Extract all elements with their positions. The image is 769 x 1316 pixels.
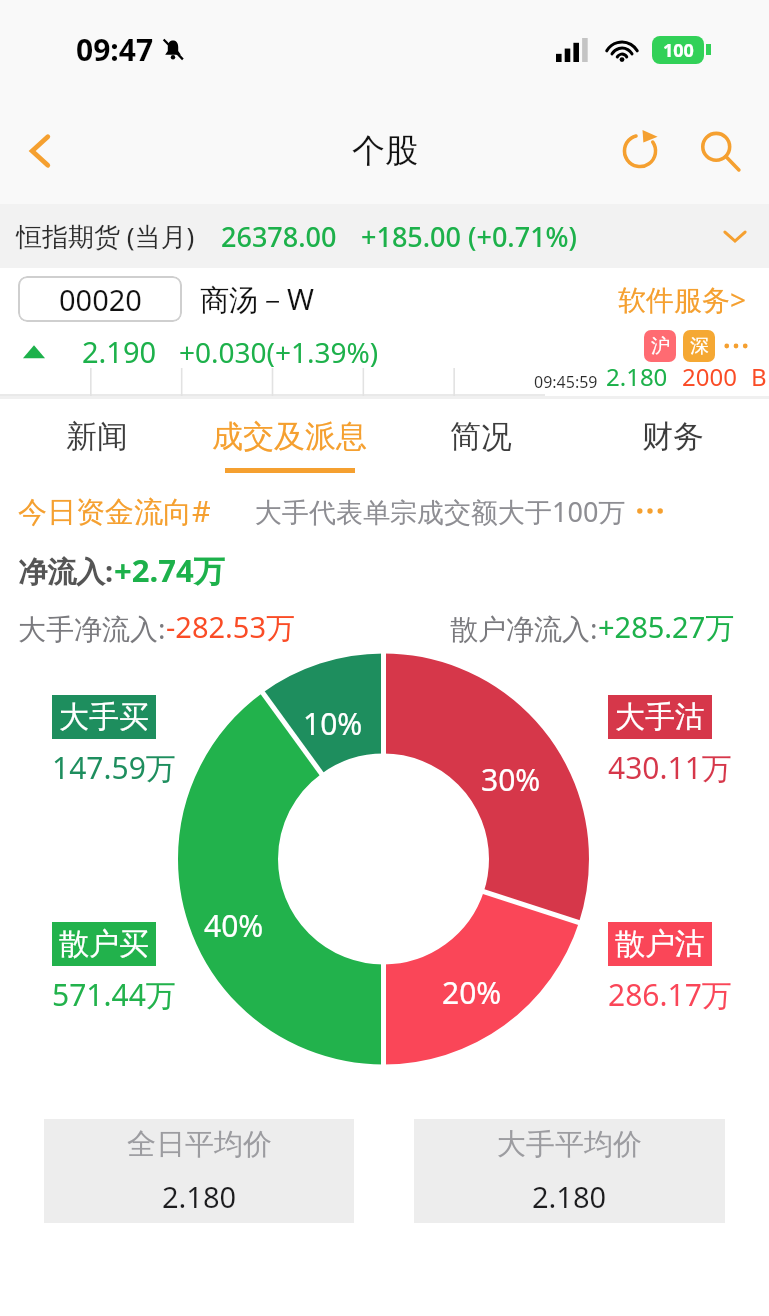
- staticText: 深: [690, 334, 709, 358]
- staticText: 2000: [682, 360, 737, 393]
- staticText: 2.190: [82, 332, 157, 371]
- staticText: 软件服务>: [618, 280, 747, 318]
- staticText: 新闻: [66, 417, 128, 456]
- staticText: 2.180: [606, 360, 668, 393]
- staticText: 大手沽: [615, 698, 705, 736]
- staticText: 大手平均价: [497, 1126, 642, 1163]
- staticText: 40%: [204, 905, 264, 946]
- staticText: +185.00 (+0.71%): [361, 218, 577, 255]
- staticText: 散户买: [59, 925, 149, 963]
- staticText: +285.27万: [598, 607, 735, 647]
- staticText: 个股: [352, 130, 418, 172]
- button[interactable]: 大手平均价: [414, 1119, 725, 1223]
- staticText: B: [751, 360, 767, 393]
- staticText: 净流入:: [18, 551, 114, 591]
- staticText: 09:47: [76, 29, 154, 70]
- staticText: +0.030(+1.39%): [179, 333, 379, 371]
- staticText: -282.53万: [166, 607, 296, 647]
- staticText: 散户净流入:: [450, 609, 598, 647]
- staticText: +2.74万: [114, 549, 225, 591]
- staticText: 00020: [59, 280, 142, 319]
- staticText: 大手代表单宗成交额大于100万: [255, 493, 626, 530]
- button[interactable]: 新闻: [0, 399, 193, 491]
- staticText: 286.17万: [608, 974, 732, 1015]
- button[interactable]: 00020: [18, 276, 182, 322]
- staticText: 恒指期货 (当月): [16, 218, 195, 254]
- staticText: 430.11万: [608, 747, 732, 788]
- staticText: 沪: [651, 334, 670, 358]
- staticText: 全日平均价: [127, 1126, 272, 1163]
- staticText: 30%: [481, 759, 541, 800]
- staticText: 商汤－W: [200, 279, 314, 319]
- button[interactable]: Refresh: [605, 116, 675, 186]
- staticText: 26378.00: [221, 218, 337, 255]
- button[interactable]: 今日资金流向#: [18, 491, 211, 531]
- staticText: 2.180: [532, 1177, 607, 1216]
- button[interactable]: More options: [634, 495, 666, 527]
- staticText: 财务: [642, 417, 704, 456]
- staticText: 大手净流入:: [18, 609, 166, 647]
- staticText: 散户沽: [615, 925, 705, 963]
- button[interactable]: 成交及派息: [193, 399, 385, 491]
- staticText: 2.180: [162, 1177, 237, 1216]
- button[interactable]: 全日平均价: [44, 1119, 354, 1223]
- staticText: 今日资金流向#: [18, 491, 211, 531]
- staticText: 成交及派息: [212, 417, 367, 456]
- staticText: 09:45:59: [534, 371, 598, 393]
- staticText: 100: [663, 38, 694, 63]
- button[interactable]: Search: [685, 116, 755, 186]
- staticText: 571.44万: [52, 974, 176, 1015]
- staticText: 大手买: [59, 698, 149, 736]
- staticText: 10%: [303, 703, 363, 744]
- button[interactable]: 简况: [385, 399, 577, 491]
- button[interactable]: Back: [6, 116, 76, 186]
- staticText: 简况: [450, 417, 512, 456]
- staticText: 147.59万: [52, 747, 176, 788]
- button[interactable]: 财务: [577, 399, 769, 491]
- button[interactable]: 恒指期货 (当月): [0, 204, 769, 268]
- staticText: 20%: [442, 972, 502, 1013]
- button[interactable]: More: [721, 331, 751, 361]
- button[interactable]: 软件服务>: [618, 280, 747, 318]
